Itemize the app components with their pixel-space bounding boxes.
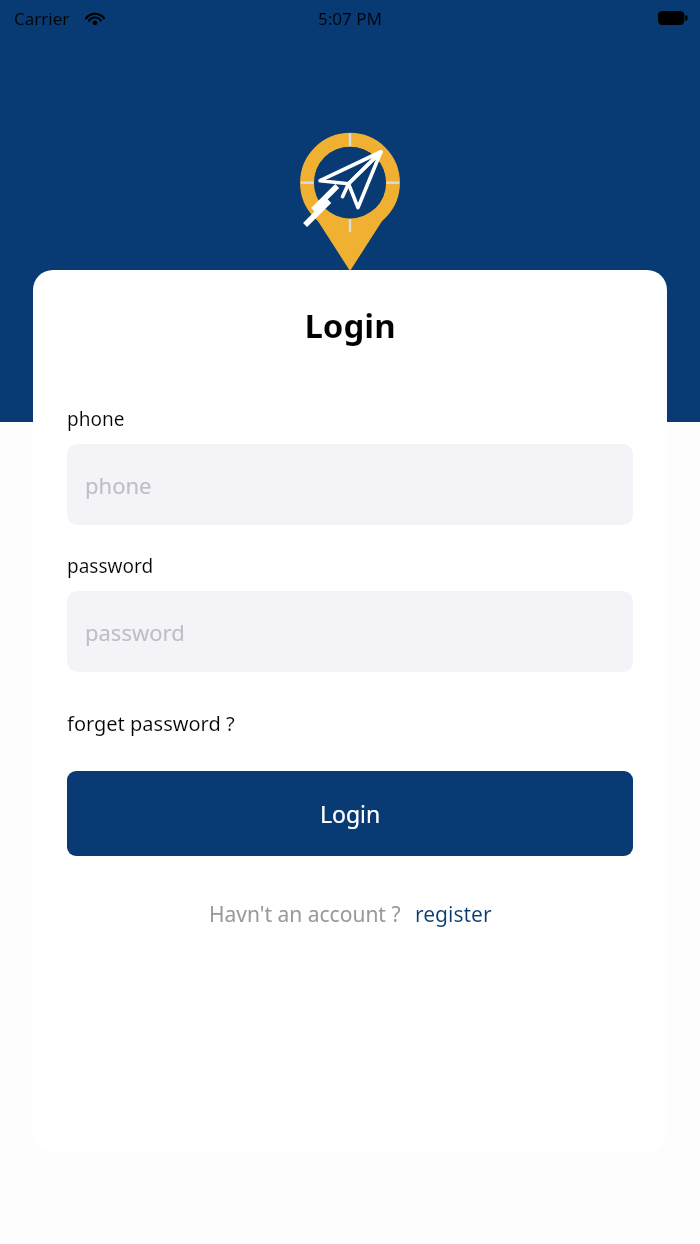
staticText: password [67,553,154,579]
button[interactable]: forget password ? [67,710,235,737]
other: App logo [298,133,402,273]
staticText: Login [33,303,667,348]
staticText: Carrier [14,7,70,30]
staticText: password [85,617,185,647]
staticText: Havn't an account ? [209,900,401,929]
staticText: 5:07 PM [318,7,382,30]
button[interactable]: phone [67,444,633,525]
button[interactable]: Login [67,771,633,856]
button[interactable]: register [415,900,492,929]
staticText: Login [320,798,381,829]
staticText: phone [85,470,152,500]
button[interactable]: password [67,591,633,672]
staticText: register [415,900,492,929]
staticText: phone [67,406,125,432]
staticText: forget password ? [67,710,235,737]
